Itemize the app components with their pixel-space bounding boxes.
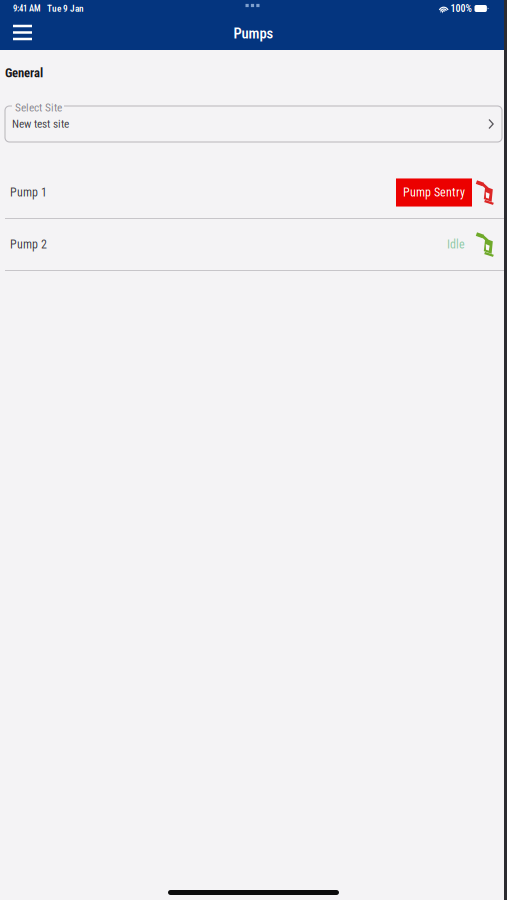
staticText: General xyxy=(5,66,43,80)
staticText: Pump 1 xyxy=(10,185,47,200)
staticText: New test site xyxy=(12,117,69,131)
button[interactable]: Menu xyxy=(0,17,46,50)
staticText: Select Site xyxy=(15,101,62,114)
staticText: 100% xyxy=(450,3,471,14)
staticText: Tue 9 Jan xyxy=(47,3,84,14)
button[interactable]: Pump 1 xyxy=(0,167,507,219)
staticText: 9:41 AM xyxy=(13,3,41,14)
staticText: Pump 2 xyxy=(10,237,47,252)
staticText: Pump Sentry xyxy=(403,185,465,200)
button[interactable]: Pump 2 xyxy=(0,219,507,271)
staticText: Idle xyxy=(447,237,465,252)
staticText: Pumps xyxy=(233,25,273,42)
